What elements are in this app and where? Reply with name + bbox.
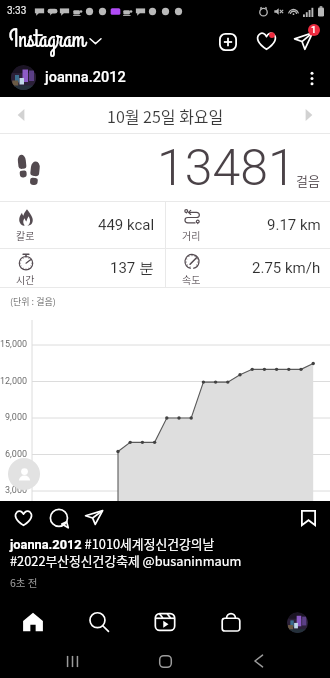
button[interactable]: joanna.2012: [11, 65, 126, 90]
button[interactable]: Profile: [264, 600, 330, 644]
button[interactable]: Back: [232, 644, 285, 678]
staticText: 3:33: [7, 5, 27, 17]
staticText: 3,000: [5, 485, 28, 496]
staticText: 10월 25일 화요일: [107, 104, 224, 127]
staticText: 1: [311, 25, 317, 36]
staticText: 12,000: [0, 376, 28, 387]
button[interactable]: Messages: [290, 28, 316, 54]
button[interactable]: 칼로: [0, 201, 164, 248]
button[interactable]: joanna.2012 #1010세계정신건강의날 #2022부산정신건강축제 …: [10, 534, 322, 590]
staticText: 6,000: [5, 449, 28, 460]
staticText: 13481: [157, 139, 296, 198]
button[interactable]: Home: [0, 600, 66, 644]
button[interactable]: 시간: [0, 249, 164, 287]
button[interactable]: Recents: [46, 644, 99, 678]
staticText: 9.17 km: [267, 216, 321, 234]
button[interactable]: 속도: [166, 249, 330, 287]
staticText: 걸음: [296, 171, 320, 190]
staticText: 시간: [16, 272, 35, 286]
button[interactable]: Tagged people: [8, 458, 40, 490]
staticText: 칼로: [16, 228, 35, 242]
button[interactable]: Save: [295, 505, 321, 531]
button[interactable]: Search: [66, 600, 132, 644]
staticText: 9,000: [5, 412, 28, 423]
staticText: 2.75 km/h: [252, 259, 321, 277]
staticText: 449 kcal: [98, 216, 155, 234]
button[interactable]: More options: [299, 65, 325, 91]
staticText: 15,000: [0, 339, 28, 350]
button[interactable]: Comment: [46, 506, 72, 532]
button[interactable]: Shop: [198, 600, 264, 644]
button[interactable]: Share: [81, 504, 107, 530]
staticText: 거리: [182, 228, 201, 242]
staticText: (단위 : 걸음): [10, 295, 56, 308]
staticText: 137 분: [110, 259, 155, 278]
button[interactable]: Like: [10, 505, 36, 531]
button[interactable]: 거리: [166, 201, 330, 248]
staticText: joanna.2012: [45, 69, 126, 86]
button[interactable]: Instagram: [9, 23, 101, 56]
staticText: 6초 전: [10, 575, 38, 590]
button[interactable]: Reels: [132, 600, 198, 644]
button[interactable]: New post: [215, 29, 241, 55]
staticText: 속도: [182, 272, 201, 286]
button[interactable]: Activity: [253, 28, 279, 54]
button[interactable]: Home: [139, 644, 192, 678]
staticText: Instagram: [9, 23, 86, 56]
staticText: joanna.2012 #1010세계정신건강의날 #2022부산정신건강축제 …: [10, 534, 242, 569]
